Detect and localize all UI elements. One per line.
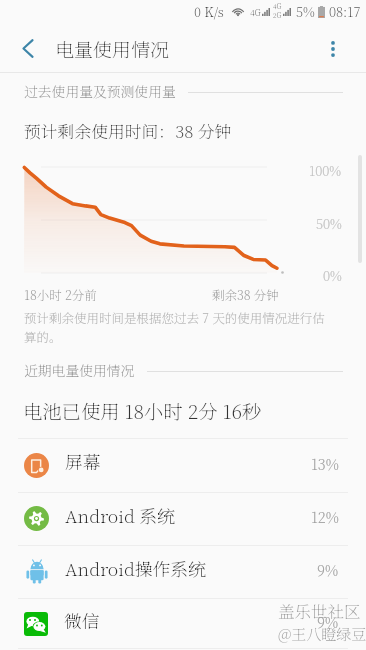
staticText: 08:17 [329,2,361,21]
staticText: 18小时 2分前 [24,286,97,304]
button[interactable]: 微信 [0,598,366,649]
button[interactable]: Android 系统 [0,492,366,545]
staticText: 屏幕 [65,449,101,475]
staticText: 剩余38 分钟 [212,286,279,304]
staticText: 盖乐世社区 [278,599,361,623]
staticText: 0% [323,266,342,285]
staticText: 过去使用量及预测使用量 [24,81,176,101]
button[interactable]: Back [10,30,46,66]
staticText: 电池已使用 18小时 2分 16秒 [23,397,262,425]
button[interactable]: Android操作系统 [0,545,366,598]
staticText: 预计剩余使用时间：38 分钟 [24,119,232,143]
staticText: 0 K/s [194,2,224,21]
staticText: 9% [317,559,339,580]
staticText: Android操作系统 [65,556,207,582]
staticText: 微信 [64,608,100,634]
staticText: 12% [311,506,339,527]
staticText: 2G [273,11,282,20]
staticText: 50% [316,214,342,233]
button[interactable]: 屏幕 [0,438,366,492]
staticText: 预计剩余使用时间是根据您过去 7 天的使用情况进行估算的。 [24,309,337,345]
staticText: 4G [273,2,282,11]
staticText: @王八瞪绿豆 [278,623,366,645]
staticText: 电量使用情况 [55,35,170,62]
staticText: 100% [309,161,342,180]
button[interactable]: More options [316,32,350,66]
staticText: 5% [296,2,315,21]
staticText: Android 系统 [65,503,176,529]
staticText: 13% [311,453,339,474]
staticText: 近期电量使用情况 [24,360,135,380]
staticText: 4G [250,6,261,18]
staticText: 9% [317,611,339,632]
